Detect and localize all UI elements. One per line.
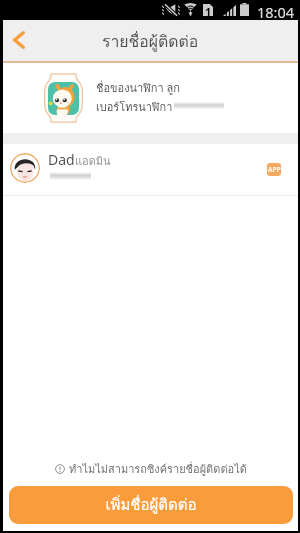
button[interactable]: Dad — [3, 144, 298, 195]
staticText: เพิ่มชื่อผู้ติดต่อ — [105, 493, 197, 517]
staticText: 18:04 — [257, 2, 295, 22]
staticText: Dad — [48, 150, 75, 169]
staticText: เบอร์โทรนาฬิกา — [96, 98, 173, 115]
button[interactable]: เพิ่มชื่อผู้ติดต่อ — [9, 486, 293, 524]
button[interactable]: ชื่อของนาฬิกา ลูก — [3, 63, 298, 133]
staticText: 1 — [205, 4, 212, 16]
staticText: ทำไมไม่สามารถซิงค์รายชื่อผู้ติดต่อได้ — [69, 460, 247, 477]
button[interactable]: Back — [3, 20, 35, 61]
staticText: APP — [268, 165, 281, 174]
button[interactable]: ทำไมไม่สามารถซิงค์รายชื่อผู้ติดต่อได้ — [3, 460, 298, 477]
staticText: ชื่อของนาฬิกา ลูก — [96, 79, 180, 96]
staticText: รายชื่อผู้ติดต่อ — [102, 29, 199, 54]
staticText: แอดมิน — [75, 152, 111, 169]
